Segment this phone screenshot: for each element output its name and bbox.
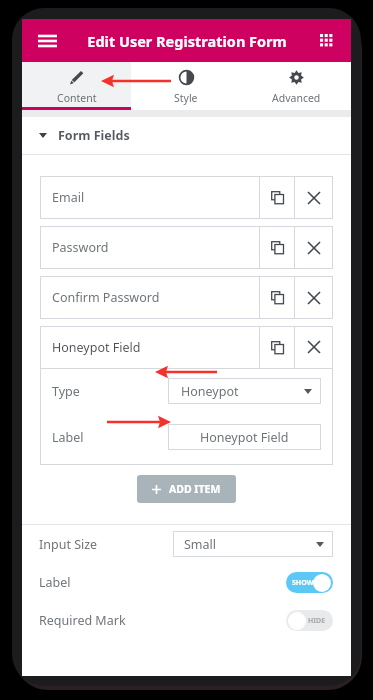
staticText: Honeypot	[181, 383, 304, 400]
button[interactable]: Widgets	[311, 25, 343, 57]
staticText: Content	[57, 91, 97, 105]
button[interactable]: Toggle off	[286, 610, 333, 631]
button[interactable]: Remove	[295, 276, 333, 319]
staticText: Email	[52, 189, 85, 206]
staticText: Input Size	[39, 536, 173, 553]
button[interactable]: ADD ITEM	[137, 475, 236, 503]
button[interactable]: Duplicate	[260, 276, 294, 319]
staticText: Advanced	[272, 91, 321, 105]
button[interactable]: Email	[40, 176, 259, 219]
staticText: Password	[52, 239, 109, 256]
button[interactable]: Confirm Password	[40, 276, 259, 319]
button[interactable]: Honeypot Field	[168, 424, 321, 450]
button[interactable]: Remove	[295, 176, 333, 219]
staticText: SHOW	[292, 578, 314, 588]
button[interactable]: Remove	[295, 326, 333, 368]
staticText: Small	[184, 536, 316, 553]
staticText: Edit User Registration Form	[87, 31, 287, 51]
staticText: HIDE	[308, 616, 326, 626]
button[interactable]: Password	[40, 226, 259, 269]
button[interactable]: Toggle on	[286, 572, 333, 593]
staticText: Form Fields	[58, 127, 130, 144]
staticText: Label	[39, 574, 286, 591]
staticText: Honeypot Field	[52, 339, 141, 356]
button[interactable]: Duplicate	[260, 176, 294, 219]
button[interactable]: Style	[131, 62, 241, 110]
button[interactable]: Content	[22, 62, 131, 110]
staticText: Style	[174, 91, 198, 105]
button[interactable]: Duplicate	[260, 326, 294, 368]
staticText: Label	[52, 429, 168, 446]
button[interactable]: Honeypot	[168, 378, 321, 404]
button[interactable]: Honeypot Field	[40, 326, 259, 368]
staticText: Honeypot Field	[200, 429, 289, 446]
button[interactable]: Menu	[30, 24, 64, 58]
button[interactable]: Form Fields	[22, 117, 351, 154]
staticText: Type	[52, 383, 168, 400]
staticText: ADD ITEM	[169, 482, 221, 496]
staticText: Confirm Password	[52, 289, 160, 306]
button[interactable]: Small	[173, 531, 333, 557]
staticText: Required Mark	[39, 612, 286, 629]
button[interactable]: Advanced	[241, 62, 351, 110]
button[interactable]: Remove	[295, 226, 333, 269]
button[interactable]: Duplicate	[260, 226, 294, 269]
